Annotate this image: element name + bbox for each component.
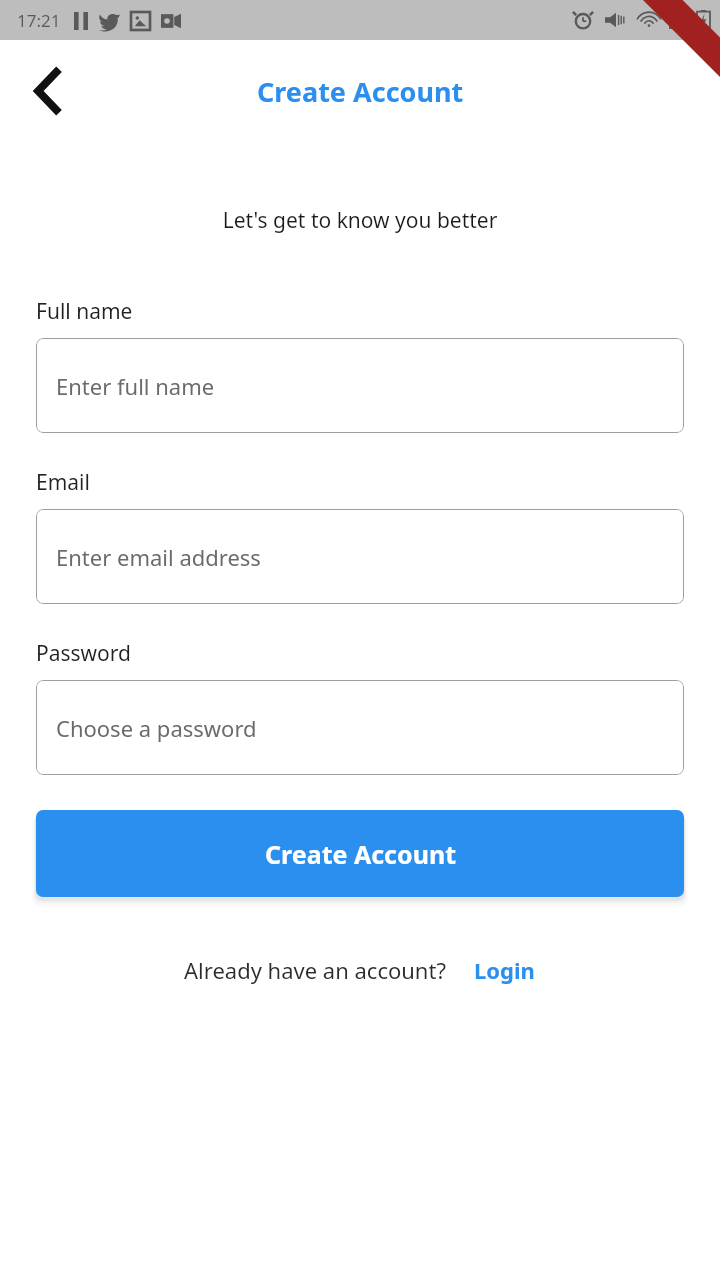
staticText: Login: [474, 955, 535, 985]
staticText: Create Account: [257, 73, 464, 110]
button[interactable]: Choose a password: [36, 680, 684, 775]
staticText: Let's get to know you better: [0, 206, 720, 235]
staticText: Password: [36, 639, 131, 668]
staticText: Email: [36, 468, 90, 497]
button[interactable]: Create Account: [36, 810, 684, 897]
staticText: Create Account: [265, 837, 456, 871]
staticText: Full name: [36, 297, 133, 326]
staticText: Choose a password: [56, 713, 257, 743]
button[interactable]: Login: [472, 951, 537, 989]
staticText: Enter full name: [56, 371, 215, 401]
staticText: DEBUG: [653, 43, 708, 97]
button[interactable]: Back: [16, 59, 80, 123]
staticText: Enter email address: [56, 542, 261, 572]
button[interactable]: Enter email address: [36, 509, 684, 604]
button[interactable]: Enter full name: [36, 338, 684, 433]
staticText: Already have an account?: [184, 955, 446, 985]
staticText: 17:21: [17, 9, 61, 32]
